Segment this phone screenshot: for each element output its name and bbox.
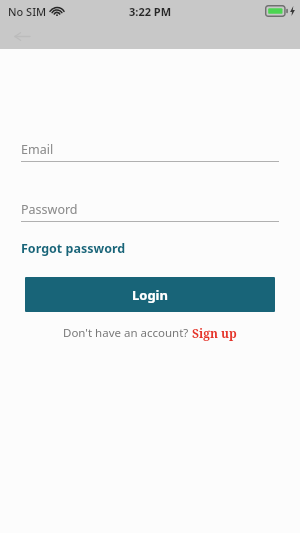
button[interactable]: Forgot password (21, 240, 126, 257)
staticText: Sign up (192, 325, 237, 341)
staticText: Email (21, 141, 54, 158)
button[interactable]: Password (21, 201, 279, 222)
staticText: Forgot password (21, 240, 126, 257)
button[interactable]: Sign up (192, 325, 237, 341)
button[interactable]: Login (25, 277, 275, 312)
staticText: Login (132, 286, 168, 304)
staticText: Password (21, 201, 78, 218)
staticText: 3:22 PM (129, 4, 172, 19)
staticText: Don't have an account? (63, 325, 192, 341)
staticText: No SIM (8, 4, 47, 19)
button[interactable]: Email (21, 141, 279, 162)
